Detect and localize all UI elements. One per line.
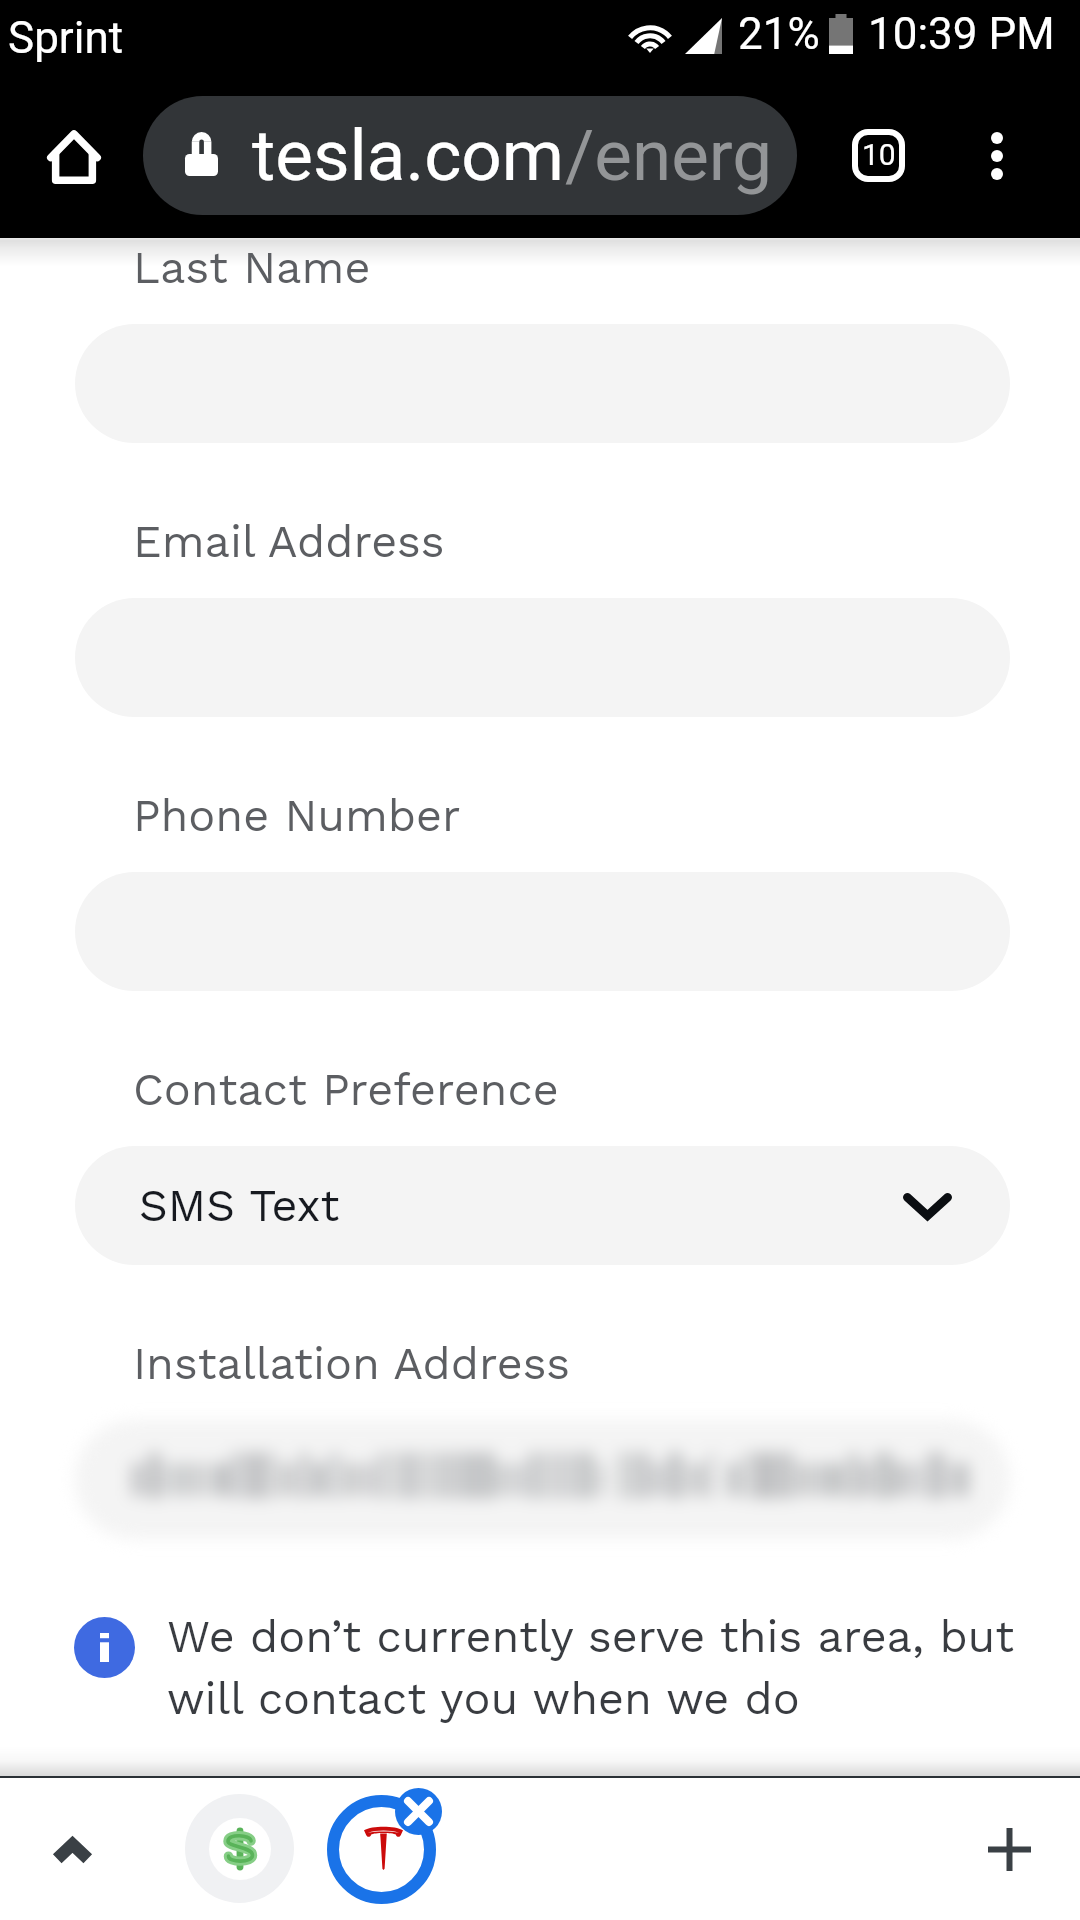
button[interactable]: Installation Address: [45, 1390, 1040, 1569]
button[interactable]: Expand autofill suggestions: [26, 1805, 118, 1897]
button[interactable]: SMS Text: [75, 1146, 1010, 1265]
button[interactable]: Tesla saved password: [327, 1786, 445, 1904]
staticText: We don’t currently serve this area, but …: [167, 1610, 1025, 1725]
staticText: tesla.com: [252, 114, 565, 197]
staticText: Contact Preference: [133, 1063, 559, 1116]
staticText: Installation Address: [133, 1337, 571, 1390]
button[interactable]: More options: [947, 102, 1047, 209]
button[interactable]: tesla.com: [143, 96, 797, 215]
button[interactable]: Home: [24, 106, 124, 206]
staticText: 10: [862, 137, 896, 172]
button[interactable]: Add new entry: [963, 1803, 1055, 1895]
button[interactable]: Switch tabs, 10 open: [828, 102, 929, 209]
staticText: Phone Number: [133, 789, 461, 842]
staticText: 10:39 PM: [868, 8, 1055, 60]
staticText: SMS Text: [139, 1179, 340, 1232]
staticText: 21%: [738, 8, 820, 60]
staticText: Sprint: [8, 12, 124, 64]
staticText: Last Name: [133, 241, 371, 294]
staticText: Email Address: [133, 515, 445, 568]
button[interactable]: Payment method autofill: [185, 1794, 294, 1903]
staticText: /energ: [565, 114, 773, 197]
